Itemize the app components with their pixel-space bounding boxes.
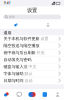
staticText: 搜索	[9, 15, 15, 19]
button[interactable]: 画中画与后台刷新	[0, 49, 64, 56]
button[interactable]: 消息	[13, 90, 26, 99]
staticText: 关于本机与软件更新	[3, 36, 39, 41]
button[interactable]: 隔空投送与隔空播放	[0, 42, 64, 49]
staticText: 9:41	[4, 1, 11, 5]
button[interactable]: 首页	[26, 90, 38, 99]
staticText: 中文	[27, 64, 36, 69]
staticText: 画中画与后台刷新	[3, 50, 35, 55]
button[interactable]: 日期与时间	[0, 77, 64, 84]
button[interactable]: 文件	[38, 90, 51, 99]
staticText: 隔空投送与隔空播放	[3, 43, 39, 48]
button[interactable]: 快捷方式二	[32, 21, 64, 29]
button[interactable]: 快捷方式一	[0, 21, 32, 29]
staticText: 字体与辅助	[3, 71, 23, 76]
button[interactable]: 发现	[0, 90, 13, 99]
button[interactable]: 关于本机与软件更新	[0, 35, 64, 42]
button[interactable]: 自动填充与密码	[0, 56, 64, 63]
button[interactable]: 字体与辅助	[0, 70, 64, 77]
staticText: 通用	[3, 30, 11, 35]
staticText: 日期与时间	[3, 78, 23, 83]
staticText: 默认	[23, 71, 32, 76]
button[interactable]: 搜索	[0, 14, 64, 21]
staticText: 开启	[35, 50, 44, 55]
button[interactable]: 我的	[51, 90, 64, 99]
staticText: 设置	[39, 36, 48, 41]
staticText: 设置	[27, 7, 37, 14]
staticText: 自动填充与密码	[3, 57, 31, 62]
staticText: 自动	[23, 78, 32, 83]
staticText: 键盘与输入法	[3, 64, 27, 69]
button[interactable]: 键盘与输入法	[0, 63, 64, 70]
